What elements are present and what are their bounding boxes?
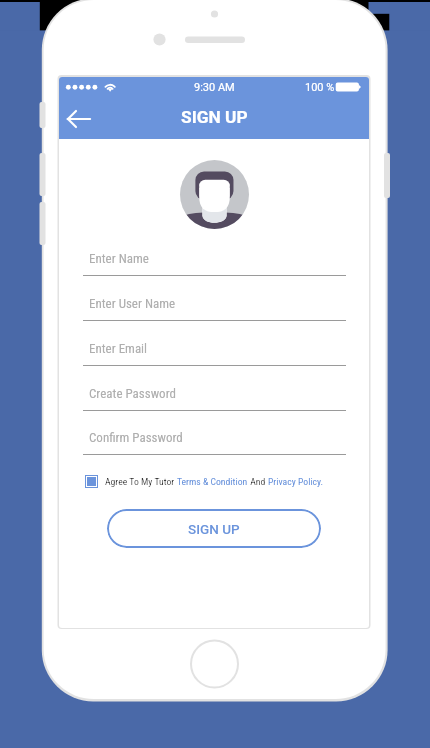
staticText: Confirm Password bbox=[89, 430, 183, 445]
staticText: Privacy Policy. bbox=[268, 476, 324, 487]
staticText: Enter Name bbox=[89, 251, 149, 266]
staticText: SIGN UP bbox=[181, 107, 248, 127]
staticText: Terms & Condition bbox=[177, 476, 248, 487]
button[interactable]: SIGN UP bbox=[107, 509, 321, 548]
staticText: 100 % bbox=[305, 81, 335, 94]
staticText: Create Password bbox=[89, 386, 176, 401]
button[interactable]: Back bbox=[63, 102, 97, 136]
staticText: And bbox=[248, 476, 268, 487]
staticText: Agree To My Tutor bbox=[105, 476, 177, 487]
staticText: SIGN UP bbox=[188, 521, 240, 537]
button[interactable]: Agree To My Tutor bbox=[85, 475, 324, 488]
staticText: Enter User Name bbox=[89, 296, 176, 311]
staticText: Enter Email bbox=[89, 341, 148, 356]
staticText: 9:30 AM bbox=[194, 81, 235, 94]
